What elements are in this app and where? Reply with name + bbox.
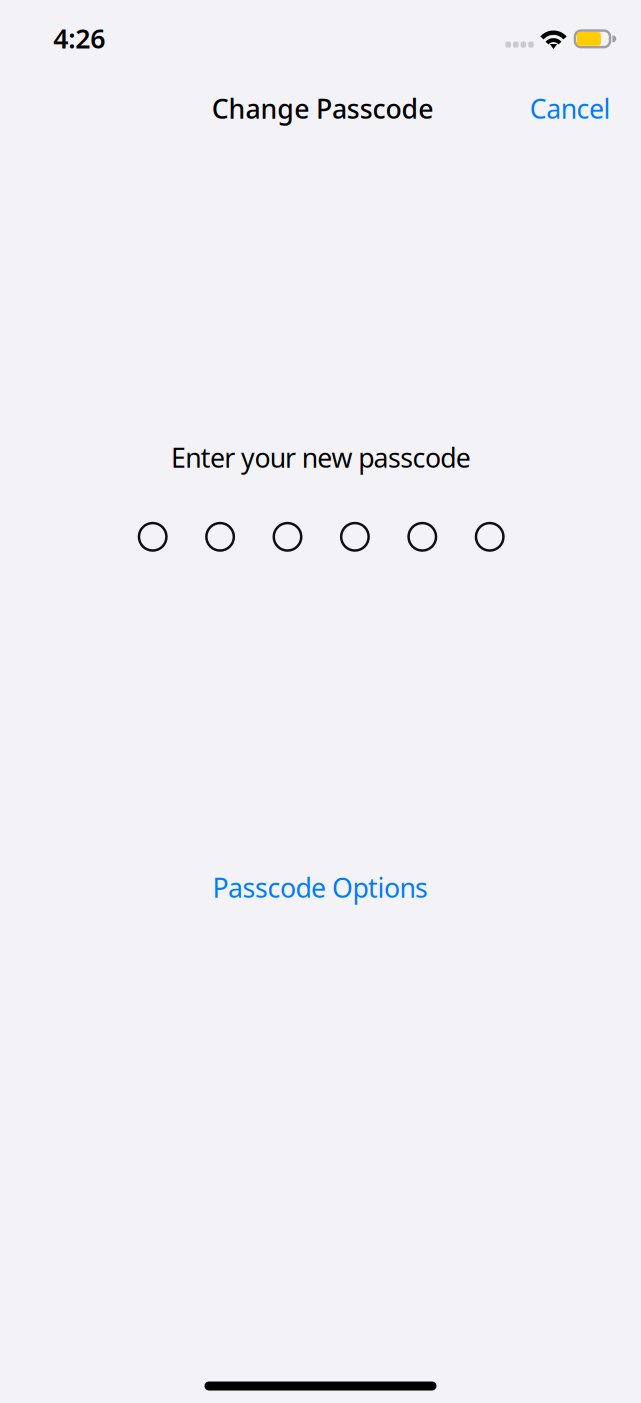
button[interactable]: Passcode Options xyxy=(180,856,460,918)
staticText: Cancel xyxy=(530,91,610,126)
staticText: Enter your new passcode xyxy=(171,440,471,475)
button[interactable]: Cancel xyxy=(500,75,610,141)
staticText: Change Passcode xyxy=(212,91,433,126)
staticText: Passcode Options xyxy=(213,870,428,905)
staticText: 4:26 xyxy=(53,20,105,56)
